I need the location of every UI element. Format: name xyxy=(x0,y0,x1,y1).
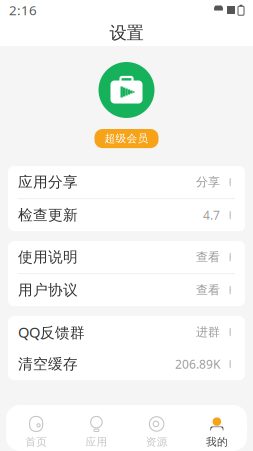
staticText: 清空缓存 xyxy=(18,355,78,373)
staticText: 查看 xyxy=(196,283,220,297)
button[interactable]: 首页 xyxy=(6,415,66,449)
staticText: 查看 xyxy=(196,250,220,264)
staticText: 进群 xyxy=(196,325,220,339)
button[interactable]: 应用 xyxy=(66,415,126,449)
staticText: QQ反馈群 xyxy=(18,322,85,342)
button[interactable]: QQ反馈群 xyxy=(8,316,245,348)
button[interactable]: 检查更新 xyxy=(8,199,245,231)
button[interactable]: 超级会员 xyxy=(94,129,158,148)
button[interactable]: 使用说明 xyxy=(8,241,245,273)
staticText: 设置 xyxy=(109,22,143,44)
button[interactable]: 应用分享 xyxy=(8,166,245,198)
button[interactable]: 用户协议 xyxy=(8,274,245,306)
staticText: 应用分享 xyxy=(18,173,78,191)
button[interactable]: 资源 xyxy=(126,415,187,449)
staticText: 首页 xyxy=(25,435,47,448)
staticText: 分享 xyxy=(196,175,220,189)
button[interactable]: 清空缓存 xyxy=(8,348,245,380)
staticText: 应用 xyxy=(85,435,107,448)
staticText: 资源 xyxy=(146,435,168,448)
staticText: 用户协议 xyxy=(18,281,78,299)
staticText: 检查更新 xyxy=(18,206,78,224)
staticText: 2:16 xyxy=(9,1,37,19)
staticText: 使用说明 xyxy=(18,248,78,266)
button[interactable]: 我的 xyxy=(187,415,247,449)
staticText: 206.89K xyxy=(175,356,220,372)
staticText: 超级会员 xyxy=(104,132,148,145)
staticText: 我的 xyxy=(206,435,228,448)
staticText: 4.7 xyxy=(203,207,220,223)
